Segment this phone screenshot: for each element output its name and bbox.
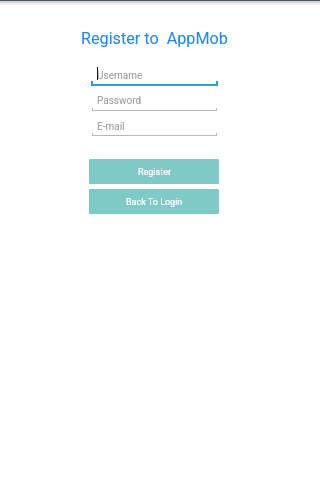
staticText: Register bbox=[138, 167, 171, 178]
staticText: Back To Login bbox=[126, 197, 183, 208]
other: Status bar bbox=[0, 0, 320, 6]
button[interactable]: Back To Login bbox=[89, 189, 219, 214]
button[interactable]: Username bbox=[91, 64, 218, 91]
button[interactable]: Password bbox=[91, 89, 218, 115]
button[interactable]: Register bbox=[89, 159, 219, 184]
staticText: Register to AppMob bbox=[81, 29, 228, 48]
staticText: Password bbox=[97, 95, 142, 107]
staticText: E-mail bbox=[97, 121, 125, 133]
staticText: Username bbox=[97, 70, 143, 82]
button[interactable]: E-mail bbox=[91, 115, 218, 141]
